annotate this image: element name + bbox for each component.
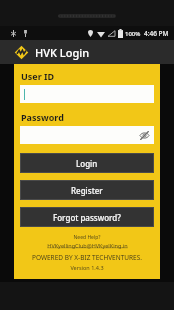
staticText: 100% — [125, 30, 141, 38]
button[interactable]: Login — [20, 153, 154, 173]
staticText: Version 1.4.3 — [20, 264, 154, 271]
staticText: User ID — [21, 70, 55, 82]
staticText: Need Help? — [20, 234, 154, 241]
staticText: Login — [76, 158, 98, 169]
button[interactable]: HVKyellingClub@HVKyelKing.in — [20, 242, 154, 249]
button[interactable]: Show password — [138, 129, 150, 141]
staticText: POWERED BY X-BIZ TECHVENTURES. — [20, 253, 154, 262]
staticText: Register — [71, 185, 103, 196]
staticText: 4:46 PM — [144, 29, 169, 38]
button[interactable] — [20, 85, 154, 103]
staticText: Password — [21, 111, 64, 123]
button[interactable]: Show password — [20, 126, 154, 144]
staticText: Forgot password? — [53, 212, 121, 223]
staticText: HVKyellingClub@HVKyelKing.in — [47, 242, 128, 249]
button[interactable]: Forgot password? — [20, 207, 154, 227]
staticText: HVK Login — [35, 45, 90, 60]
button[interactable]: Register — [20, 180, 154, 200]
